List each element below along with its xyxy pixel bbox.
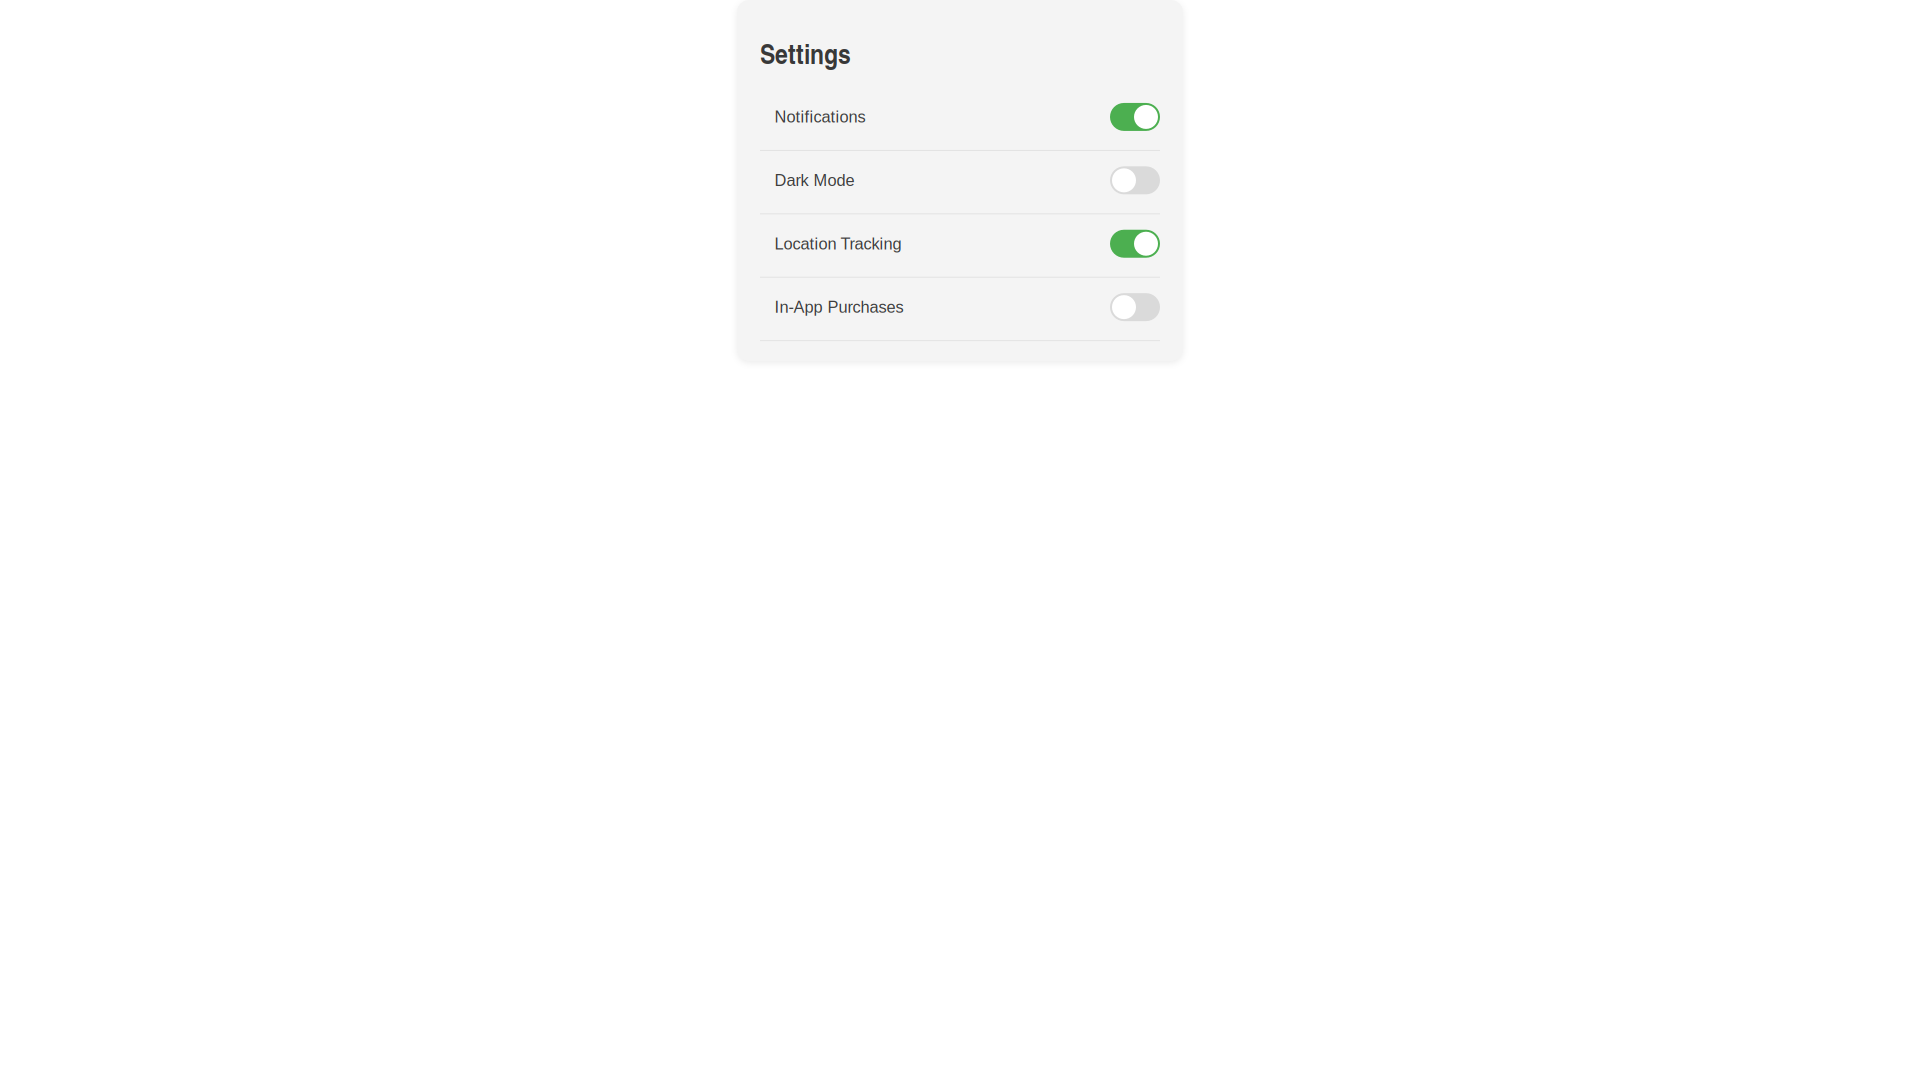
button[interactable]: In-App Purchases	[760, 278, 1160, 340]
staticText: Location Tracking	[774, 235, 901, 253]
button[interactable]: Location Tracking	[760, 214, 1160, 277]
button[interactable]: Notifications	[760, 87, 1160, 150]
staticText: Notifications	[774, 108, 865, 126]
button[interactable]: Dark Mode	[760, 151, 1160, 213]
staticText: Dark Mode	[774, 171, 854, 189]
staticText: Settings	[760, 33, 851, 72]
staticText: In-App Purchases	[774, 298, 903, 316]
